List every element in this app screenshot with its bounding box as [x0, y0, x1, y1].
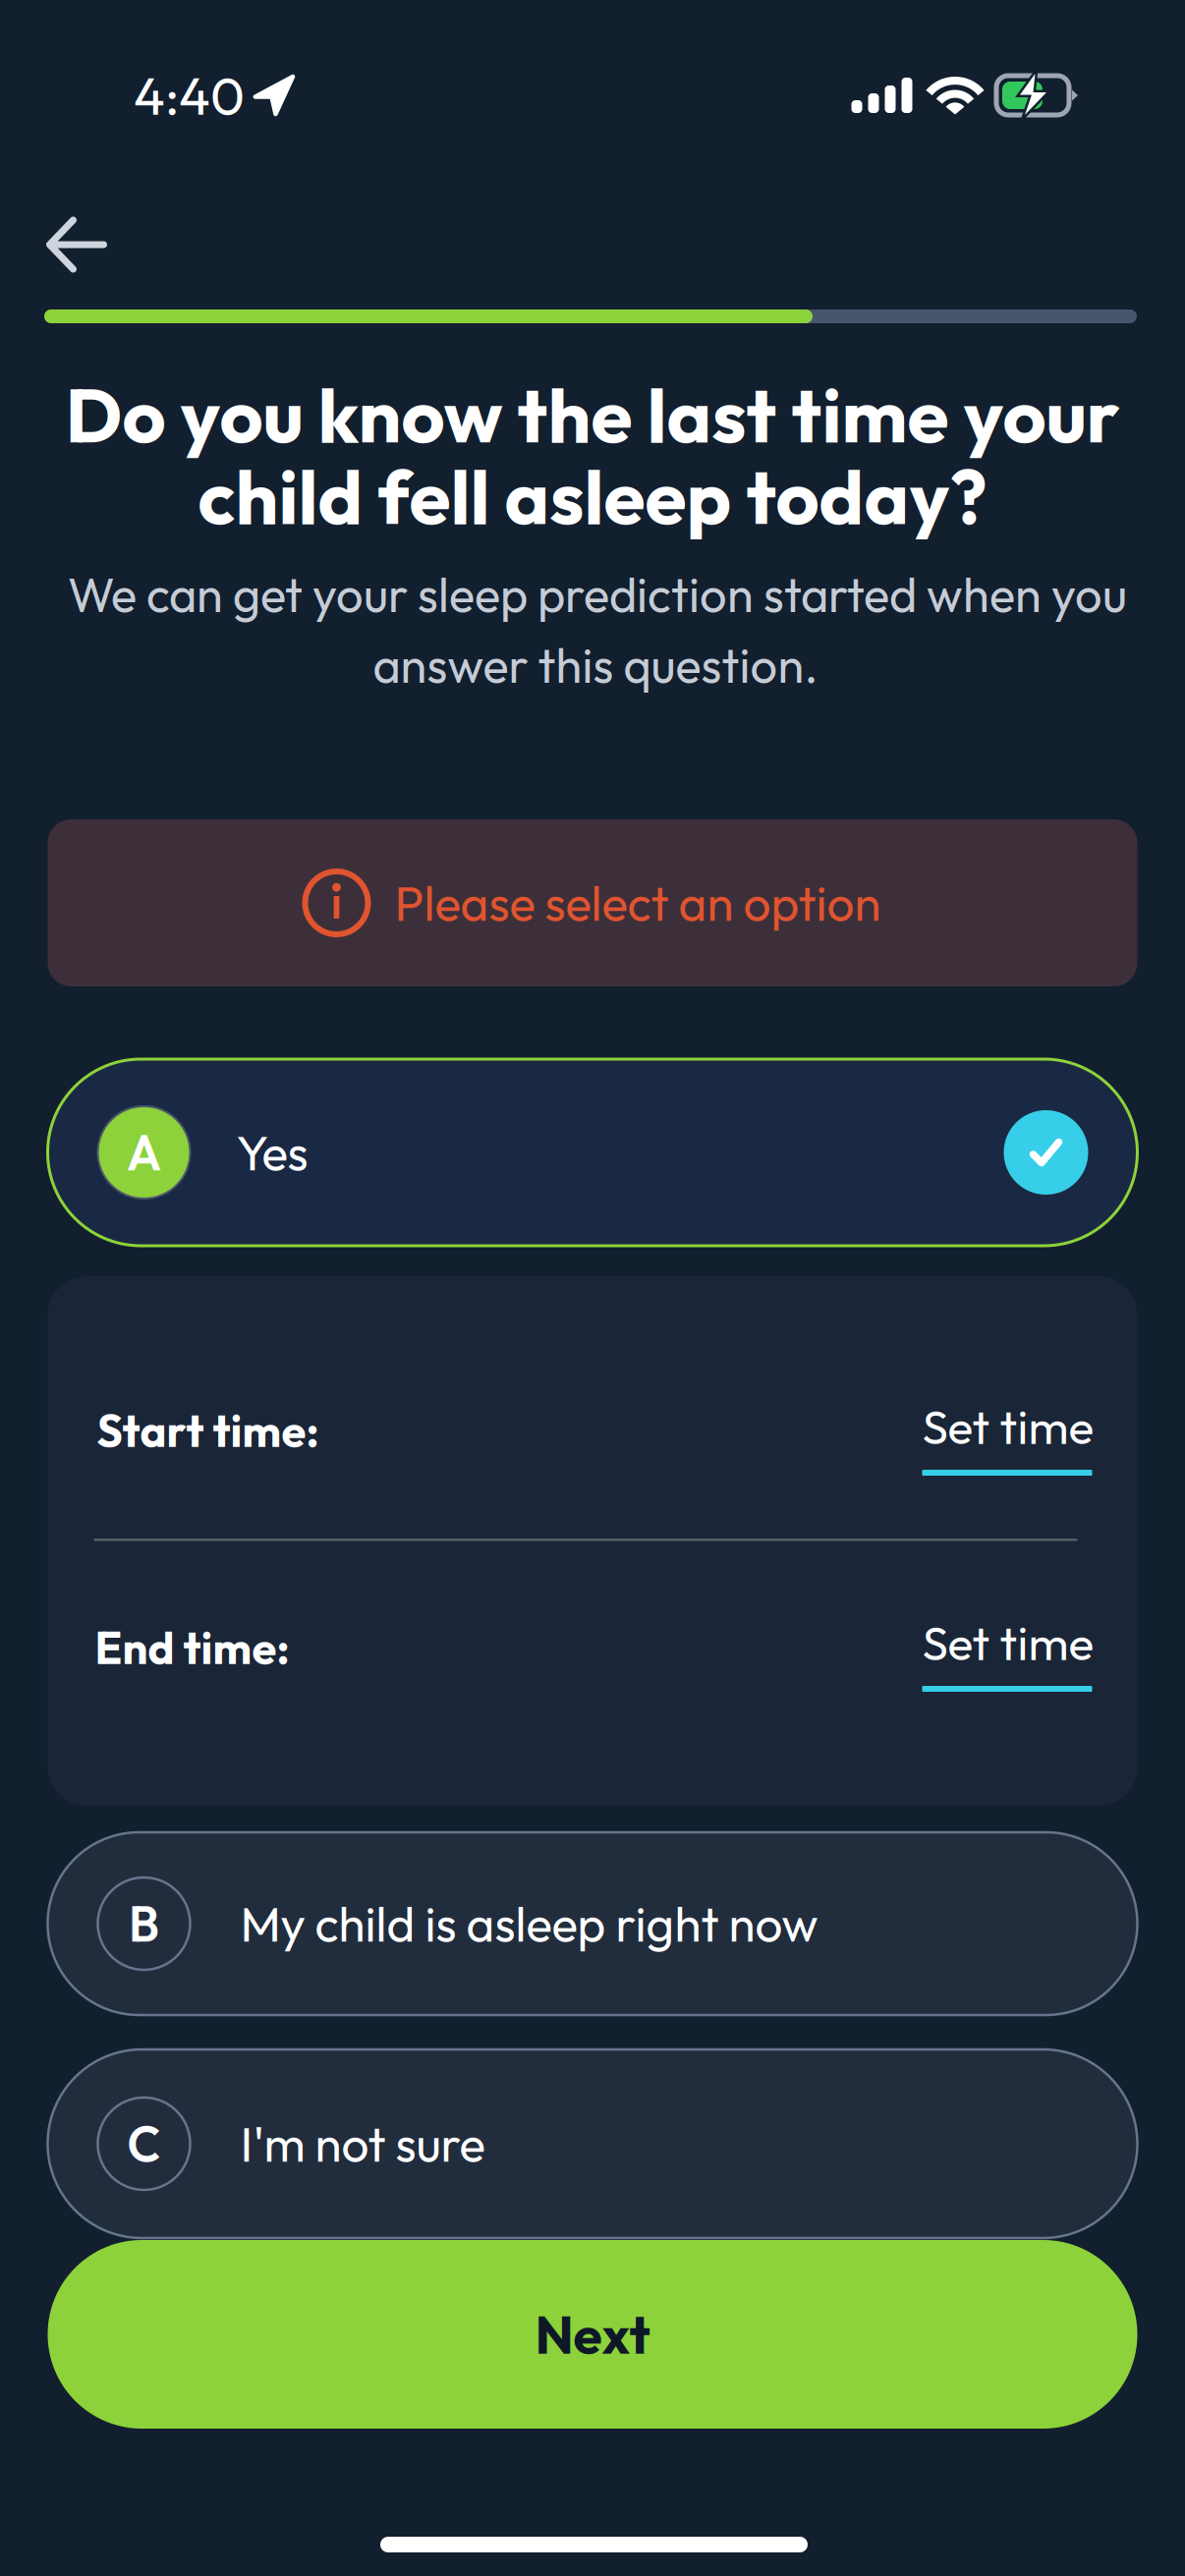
staticText: Next	[535, 2301, 650, 2367]
staticText: Set time	[922, 1397, 1094, 1456]
button[interactable]: Set time	[922, 1621, 1099, 1692]
staticText: A	[127, 1122, 161, 1183]
staticText: Set time	[922, 1613, 1094, 1672]
button[interactable]: Next	[48, 2240, 1137, 2429]
staticText: I'm not sure	[240, 2113, 485, 2174]
staticText: Yes	[236, 1122, 308, 1183]
staticText: Please select an option	[395, 872, 881, 933]
button[interactable]: Back	[13, 191, 141, 299]
button[interactable]: A	[48, 1059, 1137, 1246]
staticText: answer this question.	[373, 635, 818, 695]
staticText: B	[129, 1893, 159, 1954]
staticText: My child is asleep right now	[240, 1893, 818, 1954]
staticText: Do you know the last time your	[65, 367, 1120, 462]
staticText: End time:	[95, 1619, 289, 1676]
button[interactable]: B	[48, 1832, 1137, 2015]
staticText: 4:40	[134, 62, 245, 128]
staticText: C	[127, 2113, 161, 2174]
staticText: Start time:	[97, 1402, 319, 1458]
button[interactable]: C	[48, 2049, 1137, 2238]
staticText: child fell asleep today?	[198, 449, 987, 544]
staticText: We can get your sleep prediction started…	[68, 564, 1127, 624]
button[interactable]: Set time	[922, 1405, 1099, 1476]
